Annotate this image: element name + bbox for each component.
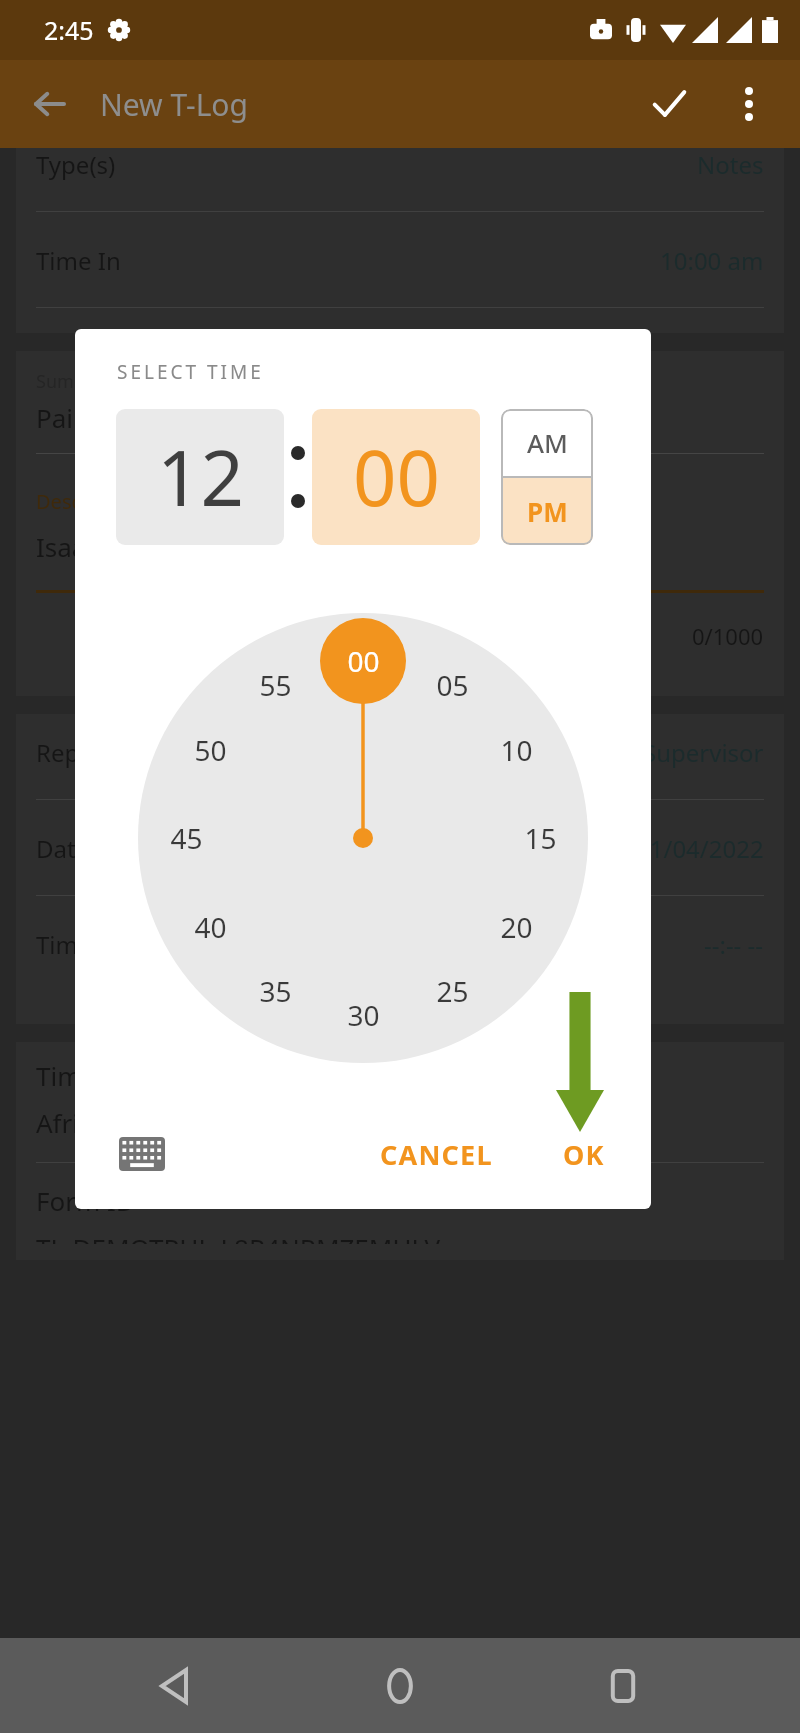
staticText: 45	[170, 819, 203, 857]
button[interactable]: AM	[501, 409, 593, 476]
staticText: 55	[259, 666, 292, 704]
staticText: PM	[527, 494, 568, 529]
staticText: New T-Log	[100, 84, 248, 125]
staticText: Notes	[697, 148, 764, 181]
button[interactable]: More options	[714, 60, 784, 148]
staticText: Supervisor	[643, 736, 764, 769]
button[interactable]: Recent apps	[578, 1641, 668, 1731]
staticText: Form ID	[36, 1183, 135, 1218]
button[interactable]: 12	[116, 409, 284, 545]
button[interactable]: Home	[355, 1641, 445, 1731]
staticText: Time In	[36, 244, 121, 277]
staticText: AM	[527, 425, 568, 460]
staticText: 30	[347, 996, 380, 1034]
button[interactable]: Save	[624, 60, 714, 148]
staticText: OK	[563, 1136, 605, 1173]
staticText: 10	[500, 731, 533, 769]
staticText: Description	[36, 488, 144, 515]
staticText: 00	[353, 425, 440, 529]
staticText: SELECT TIME	[117, 359, 264, 385]
staticText: 0/1000	[692, 621, 764, 651]
staticText: 20	[500, 908, 533, 946]
staticText: Isaac	[36, 529, 99, 564]
staticText: Reported By	[36, 736, 175, 769]
button[interactable]: PM	[501, 478, 593, 545]
staticText: 15	[524, 819, 557, 857]
staticText: CANCEL	[380, 1136, 493, 1173]
button[interactable]: Back	[133, 1641, 223, 1731]
button[interactable]: OK	[545, 1122, 623, 1187]
staticText: Type(s)	[36, 148, 116, 181]
staticText: --:-- --	[704, 928, 764, 961]
staticText: 11/04/2022	[636, 832, 764, 865]
staticText: 12	[157, 425, 244, 529]
staticText: 50	[194, 731, 227, 769]
staticText: TL-DEMOTPHL-L8R4NRMZEMULV	[36, 1230, 441, 1244]
staticText: 05	[436, 666, 469, 704]
staticText: 00	[347, 642, 380, 680]
button[interactable]: Switch to text input	[115, 1127, 169, 1181]
staticText: Summary	[36, 369, 118, 394]
button[interactable]: 00	[312, 409, 480, 545]
staticText: 2:45	[44, 13, 94, 47]
staticText: 10:00 am	[660, 244, 764, 277]
staticText: Africa/Kampala	[36, 1105, 223, 1140]
staticText: 35	[259, 972, 292, 1010]
button[interactable]: CANCEL	[362, 1122, 511, 1187]
button[interactable]: Back	[0, 60, 100, 148]
staticText: 40	[194, 908, 227, 946]
staticText: Pain	[36, 400, 90, 435]
staticText: Date	[36, 832, 90, 865]
staticText: Time Zone	[36, 1058, 165, 1093]
staticText: 25	[436, 972, 469, 1010]
staticText: Time	[36, 928, 92, 961]
